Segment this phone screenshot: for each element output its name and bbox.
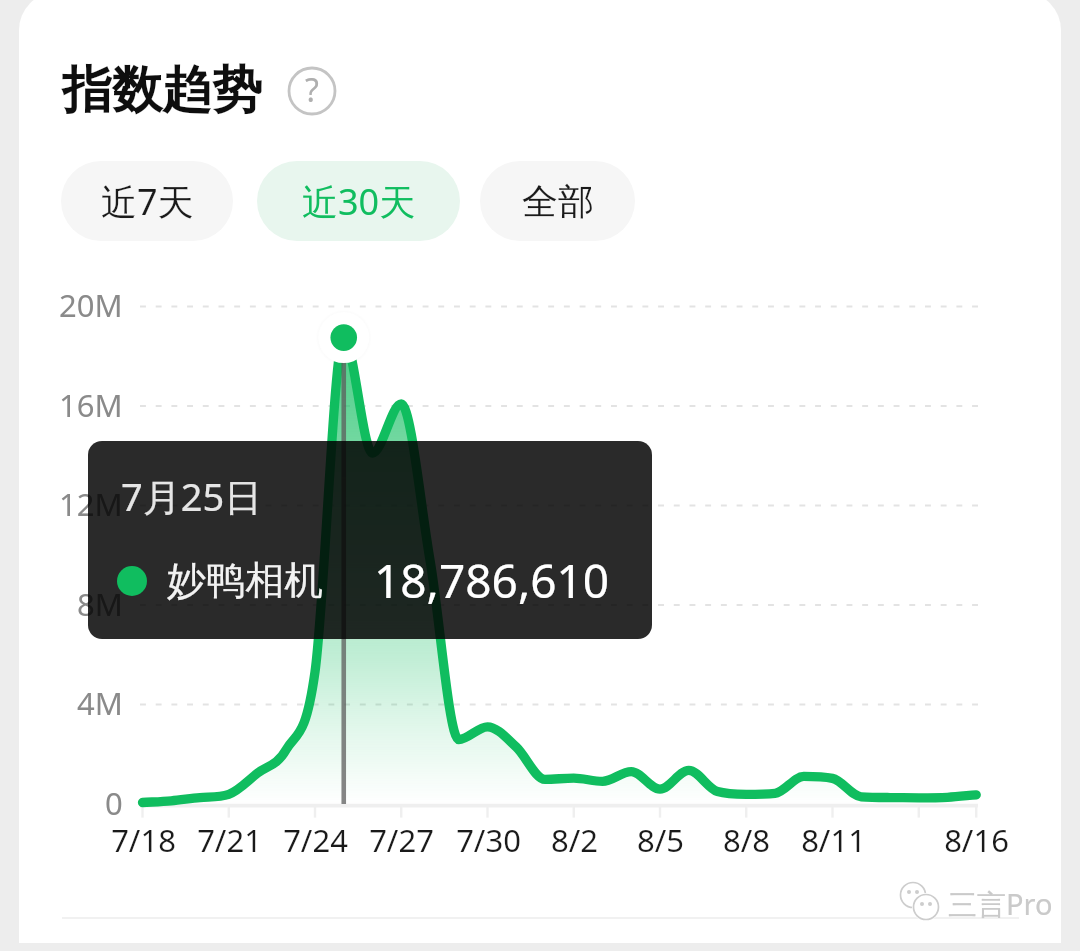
staticText: 8/8 <box>723 819 770 861</box>
staticText: 妙鸭相机 <box>167 556 323 605</box>
staticText: 近7天 <box>101 177 194 226</box>
button[interactable]: 全部 <box>480 161 635 241</box>
staticText: ? <box>305 68 319 112</box>
button[interactable]: 7月25日 <box>88 441 652 639</box>
staticText: 8/11 <box>801 819 866 861</box>
button[interactable]: 近7天 <box>61 161 233 241</box>
staticText: 16M <box>59 384 123 426</box>
button[interactable]: 帮助 <box>286 65 338 117</box>
staticText: 8/2 <box>551 819 598 861</box>
staticText: 8/5 <box>637 819 684 861</box>
staticText: 20M <box>59 284 123 326</box>
staticText: 近30天 <box>302 177 416 226</box>
staticText: 指数趋势 <box>62 59 262 122</box>
staticText: 7/21 <box>197 819 262 861</box>
staticText: 18,786,610 <box>374 549 610 612</box>
staticText: 12M <box>59 483 123 525</box>
staticText: 全部 <box>522 179 594 224</box>
staticText: 4M <box>77 682 123 724</box>
staticText: 0 <box>105 782 123 824</box>
staticText: 三言Pro <box>948 884 1053 924</box>
staticText: 7/30 <box>456 819 521 861</box>
staticText: 7/24 <box>283 819 348 861</box>
staticText: 7/27 <box>369 819 434 861</box>
staticText: 7月25日 <box>121 470 263 522</box>
staticText: 8/16 <box>944 819 1009 861</box>
staticText: 7/18 <box>111 819 176 861</box>
button[interactable]: 近30天 <box>257 161 460 241</box>
staticText: 8M <box>77 583 123 625</box>
